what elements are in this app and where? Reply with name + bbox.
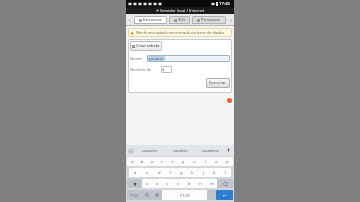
button[interactable]: r: [157, 157, 167, 166]
staticText: i: [205, 159, 207, 165]
button[interactable]: q: [127, 157, 137, 166]
staticText: .: [211, 192, 213, 198]
staticText: Servidor local / Internet: [160, 8, 205, 13]
button[interactable]: Emoji: [142, 190, 152, 200]
staticText: Nenhuma tabela encontrada na base de dad…: [136, 30, 225, 35]
button[interactable]: PT-BR: [162, 190, 207, 200]
staticText: r: [161, 159, 163, 165]
button[interactable]: Próximo: [227, 14, 234, 26]
staticText: ?123: [130, 193, 139, 198]
button[interactable]: d: [153, 168, 165, 177]
staticText: z: [146, 181, 148, 187]
staticText: SQL: [178, 17, 186, 23]
button[interactable]: ?123: [127, 190, 142, 200]
button[interactable]: j: [198, 168, 209, 177]
button[interactable]: s: [141, 168, 153, 177]
button[interactable]: Criar tabela: [130, 41, 162, 51]
button[interactable]: usuários: [195, 145, 225, 156]
button[interactable]: c: [162, 179, 173, 188]
staticText: ›: [230, 16, 232, 24]
staticText: f: [170, 170, 172, 176]
staticText: p: [226, 159, 229, 165]
button[interactable]: f: [165, 168, 176, 177]
button[interactable]: Entrada de voz: [225, 145, 232, 156]
staticText: o: [215, 159, 218, 165]
button[interactable]: a: [129, 168, 141, 177]
staticText: Executar: [209, 80, 227, 86]
button[interactable]: Apagar: [217, 179, 233, 188]
staticText: b: [188, 181, 191, 187]
staticText: a: [134, 170, 137, 176]
staticText: g: [180, 170, 183, 176]
staticText: Criar tabela: [136, 43, 160, 49]
staticText: l: [225, 170, 227, 176]
staticText: usuários: [202, 148, 219, 154]
button[interactable]: b: [184, 179, 195, 188]
staticText: PT-BR: [180, 193, 190, 198]
button[interactable]: y: [178, 157, 189, 166]
button[interactable]: usuario: [147, 55, 230, 62]
button[interactable]: w: [137, 157, 147, 166]
button[interactable]: usuário: [165, 145, 195, 156]
staticText: Número de colunas:: [130, 67, 161, 72]
button[interactable]: z: [142, 179, 152, 188]
button[interactable]: Executar: [206, 78, 230, 88]
button[interactable]: h: [187, 168, 198, 177]
staticText: usuario: [142, 148, 157, 154]
button[interactable]: e: [147, 157, 157, 166]
button[interactable]: Mais sugestões: [128, 148, 134, 154]
staticText: Pesquisar: [201, 17, 221, 23]
button[interactable]: Estrutura: [134, 16, 167, 24]
staticText: w: [140, 159, 144, 165]
button[interactable]: Pesquisar: [192, 16, 226, 24]
staticText: c: [166, 181, 169, 187]
button[interactable]: SQL: [169, 16, 190, 24]
staticText: m: [210, 181, 214, 187]
button[interactable]: g: [176, 168, 187, 177]
button[interactable]: n: [195, 179, 206, 188]
button[interactable]: 4: [161, 66, 172, 73]
staticText: q: [131, 159, 134, 165]
staticText: t: [172, 159, 174, 165]
staticText: v: [177, 181, 180, 187]
button[interactable]: t: [167, 157, 178, 166]
button[interactable]: v: [173, 179, 184, 188]
button[interactable]: Mudar idioma: [152, 190, 162, 200]
button[interactable]: usuario: [134, 145, 165, 156]
staticText: e: [151, 159, 154, 165]
button[interactable]: m: [206, 179, 217, 188]
button[interactable]: i: [200, 157, 211, 166]
button[interactable]: p: [222, 157, 233, 166]
staticText: Estrutura: [143, 17, 162, 23]
staticText: 4: [162, 67, 165, 72]
button[interactable]: Enter: [216, 190, 233, 200]
staticText: n: [199, 181, 202, 187]
staticText: usuário: [173, 148, 188, 154]
button[interactable]: Shift: [127, 179, 142, 188]
button[interactable]: l: [220, 168, 231, 177]
staticText: k: [213, 170, 216, 176]
staticText: Nome:: [130, 56, 143, 61]
button[interactable]: x: [152, 179, 162, 188]
staticText: j: [203, 170, 205, 176]
button[interactable]: k: [209, 168, 220, 177]
staticText: h: [191, 170, 194, 176]
staticText: ›: [130, 148, 132, 154]
staticText: x: [156, 181, 159, 187]
button[interactable]: Anterior: [126, 14, 133, 26]
button[interactable]: u: [189, 157, 200, 166]
staticText: s: [146, 170, 149, 176]
staticText: usuario: [149, 56, 164, 61]
staticText: 17:33: [219, 1, 230, 7]
staticText: d: [158, 170, 161, 176]
staticText: y: [182, 159, 185, 165]
staticText: ‹: [129, 16, 131, 24]
staticText: u: [193, 159, 196, 165]
button[interactable]: o: [211, 157, 222, 166]
